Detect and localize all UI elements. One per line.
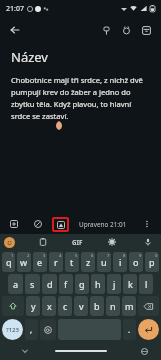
button[interactable]: Shift [2, 296, 24, 316]
button[interactable]: Palette [30, 216, 46, 232]
button[interactable]: Backspace [138, 296, 159, 316]
button[interactable]: Hide keyboard [18, 344, 32, 358]
button[interactable]: Voice input [141, 235, 155, 249]
button[interactable]: y [26, 296, 40, 316]
button[interactable]: GIF [72, 238, 83, 246]
button[interactable]: o [129, 252, 143, 272]
staticText: j [113, 278, 116, 290]
staticText: 2 [27, 253, 30, 259]
button[interactable]: v [74, 296, 88, 316]
button[interactable]: j [107, 274, 121, 294]
button[interactable]: Emoji [4, 237, 15, 248]
staticText: n [110, 300, 116, 312]
button[interactable]: u [97, 252, 111, 272]
button[interactable]: Settings [105, 235, 119, 249]
button[interactable]: Change keyboard [137, 344, 151, 358]
staticText: . [128, 324, 131, 335]
staticText: t [70, 256, 74, 268]
button[interactable]: Back [5, 20, 25, 40]
button[interactable]: t [65, 252, 79, 272]
staticText: c [63, 300, 68, 312]
staticText: b [94, 300, 100, 312]
staticText: 8 [123, 253, 126, 259]
button[interactable]: Archive [136, 20, 156, 40]
staticText: f [64, 278, 68, 290]
button[interactable]: p [145, 252, 159, 272]
staticText: a [13, 278, 19, 290]
staticText: 7 [107, 253, 110, 259]
button[interactable]: d [42, 274, 57, 294]
staticText: s [30, 278, 35, 290]
staticText: 4 [59, 253, 62, 259]
button[interactable]: a [8, 274, 23, 294]
staticText: u [101, 256, 107, 268]
button[interactable]: Clipboard [36, 235, 50, 249]
button[interactable]: . [123, 319, 136, 340]
staticText: 21:07 [6, 4, 24, 14]
button[interactable]: e [33, 252, 47, 272]
staticText: q [6, 256, 12, 268]
button[interactable] [40, 319, 56, 340]
button[interactable]: c [58, 296, 72, 316]
staticText: , [30, 324, 33, 335]
staticText: v [79, 300, 84, 312]
button[interactable]: , [25, 319, 38, 340]
button[interactable]: i [113, 252, 127, 272]
button[interactable]: w [17, 252, 31, 272]
staticText: m [125, 300, 134, 312]
staticText: h [95, 278, 101, 290]
button[interactable]: m [122, 296, 136, 316]
staticText: e [37, 256, 43, 268]
button[interactable]: q [2, 252, 15, 272]
button[interactable]: r [49, 252, 63, 272]
button[interactable]: z [81, 252, 95, 272]
staticText: k [128, 278, 133, 290]
staticText: o [133, 256, 139, 268]
button[interactable]: Pin [96, 20, 116, 40]
button[interactable]: Add [6, 216, 22, 232]
button[interactable]: s [25, 274, 40, 294]
button[interactable]: h [91, 274, 105, 294]
staticText: ?123 [6, 326, 19, 334]
staticText: x [47, 300, 52, 312]
button[interactable]: g [75, 274, 89, 294]
staticText: z [86, 256, 91, 268]
button[interactable]: Symbols [2, 319, 23, 340]
staticText: 5 [75, 253, 78, 259]
staticText: p [149, 256, 155, 268]
staticText: w [20, 256, 28, 268]
button[interactable]: Add image [52, 217, 69, 232]
button[interactable]: n [106, 296, 120, 316]
staticText: Název [11, 48, 48, 66]
staticText: 9 [139, 253, 142, 259]
button[interactable]: l [139, 274, 153, 294]
button[interactable]: Reminder [116, 20, 136, 40]
button[interactable]: f [59, 274, 73, 294]
staticText: 6 [91, 253, 94, 259]
staticText: l [145, 278, 148, 290]
staticText: i [119, 256, 122, 268]
staticText: Upraveno 21:01 [79, 220, 127, 229]
staticText: GIF [72, 238, 83, 246]
staticText: Chobotnice mají tři srdce, z nichž dvě p… [11, 75, 150, 121]
button[interactable]: k [123, 274, 137, 294]
button[interactable]: Enter [138, 319, 159, 340]
staticText: d [47, 278, 53, 290]
staticText: 3 [43, 253, 46, 259]
button[interactable]: b [90, 296, 104, 316]
button[interactable]: x [42, 296, 56, 316]
staticText: r [54, 256, 58, 268]
button[interactable]: More options [139, 216, 155, 232]
staticText: y [31, 300, 36, 312]
staticText: g [79, 278, 85, 290]
staticText: 0 [155, 253, 158, 259]
staticText: 1 [11, 253, 14, 259]
